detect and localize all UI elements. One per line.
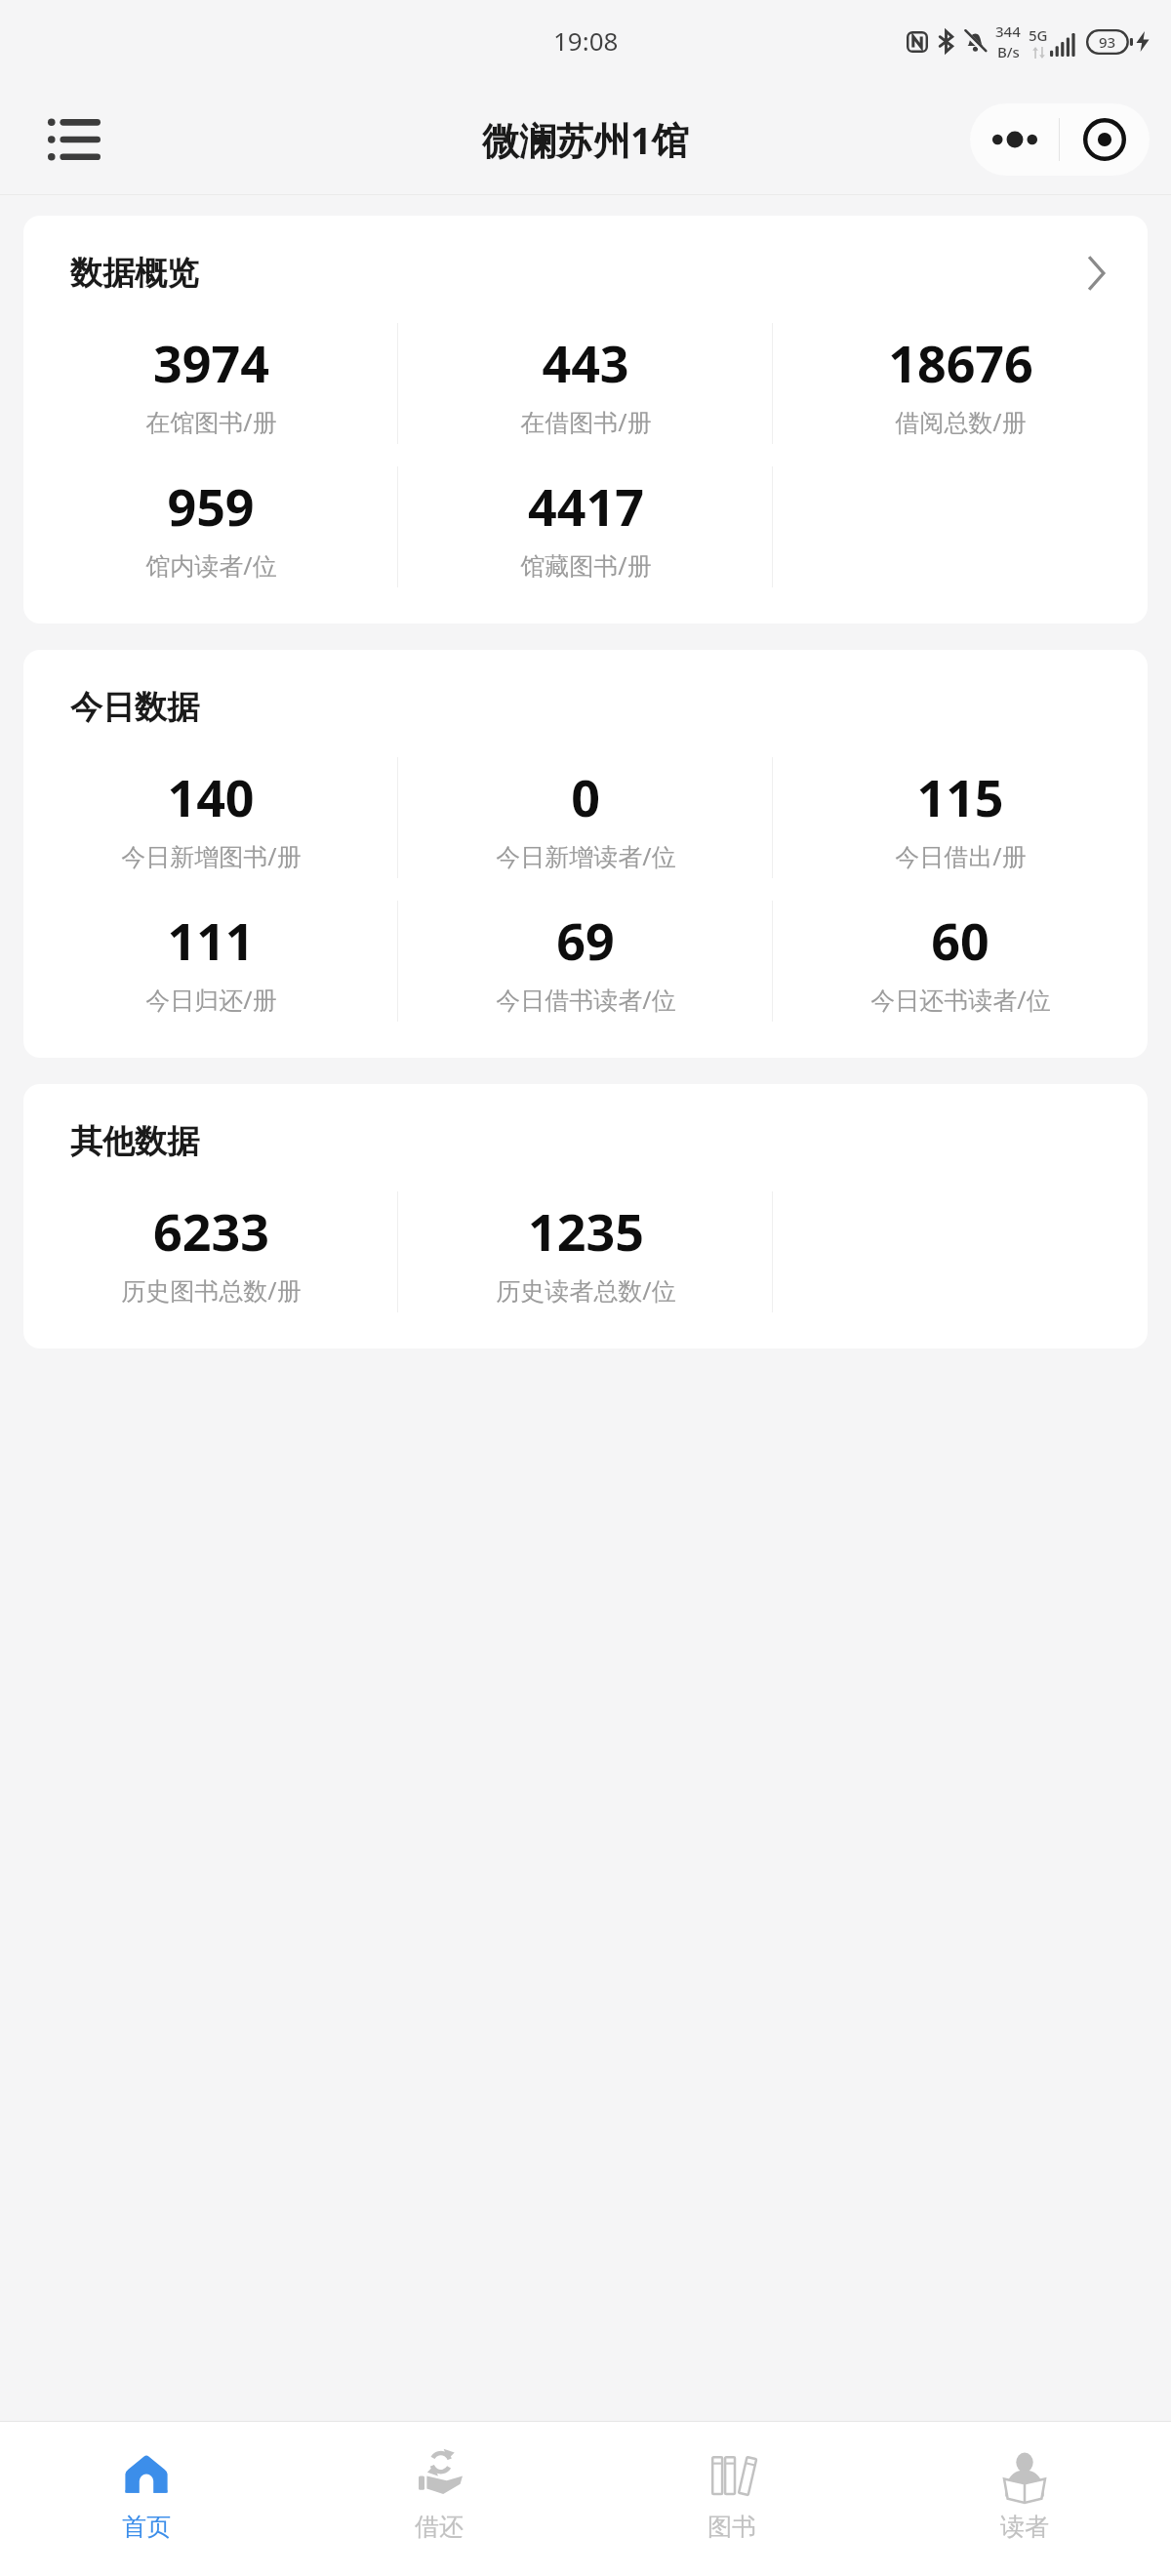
staticText: 111: [167, 906, 255, 975]
button[interactable]: 今日数据: [23, 650, 1148, 1058]
staticText: 今日借书读者/位: [496, 983, 676, 1016]
staticText: 5G: [1029, 25, 1048, 45]
staticText: 馆藏图书/册: [520, 548, 652, 582]
staticText: 18676: [888, 328, 1033, 397]
staticText: 今日归还/册: [145, 983, 277, 1016]
staticText: 3974: [153, 328, 269, 397]
staticText: 数据概览: [70, 253, 199, 294]
staticText: 今日新增读者/位: [496, 839, 676, 872]
staticText: 344: [995, 21, 1021, 41]
staticText: 69: [556, 906, 615, 975]
staticText: 历史图书总数/册: [121, 1273, 302, 1307]
button[interactable]: More options: [970, 103, 1059, 176]
button[interactable]: 其他数据: [23, 1084, 1148, 1348]
button[interactable]: 数据概览: [23, 216, 1148, 624]
staticText: 60: [931, 906, 989, 975]
staticText: 6233: [153, 1196, 269, 1266]
staticText: 历史读者总数/位: [496, 1273, 676, 1307]
staticText: 140: [167, 762, 255, 831]
staticText: 443: [542, 328, 629, 397]
staticText: 微澜苏州1馆: [482, 114, 689, 165]
button[interactable]: 首页: [0, 2422, 293, 2576]
staticText: 19:08: [553, 23, 619, 58]
staticText: 93: [1099, 32, 1116, 52]
staticText: 115: [916, 762, 1004, 831]
button[interactable]: 借还: [293, 2422, 585, 2576]
staticText: 4417: [528, 471, 644, 541]
staticText: B/s: [997, 42, 1020, 61]
button[interactable]: 读者: [878, 2422, 1171, 2576]
staticText: 读者: [1000, 2512, 1049, 2542]
staticText: 借阅总数/册: [895, 405, 1027, 438]
staticText: 今日新增图书/册: [121, 839, 302, 872]
staticText: 1235: [528, 1196, 644, 1266]
staticText: 首页: [122, 2512, 171, 2542]
button[interactable]: Menu: [37, 102, 111, 177]
staticText: 馆内读者/位: [145, 548, 277, 582]
staticText: 今日还书读者/位: [870, 983, 1051, 1016]
staticText: 在馆图书/册: [145, 405, 277, 438]
staticText: 959: [167, 471, 255, 541]
staticText: 在借图书/册: [520, 405, 652, 438]
staticText: 今日数据: [70, 687, 199, 728]
button[interactable]: 图书: [585, 2422, 878, 2576]
staticText: 图书: [707, 2512, 756, 2542]
staticText: 0: [571, 762, 600, 831]
staticText: 今日借出/册: [895, 839, 1027, 872]
staticText: 借还: [415, 2512, 464, 2542]
staticText: 其他数据: [70, 1121, 199, 1162]
button[interactable]: Close: [1060, 103, 1150, 176]
